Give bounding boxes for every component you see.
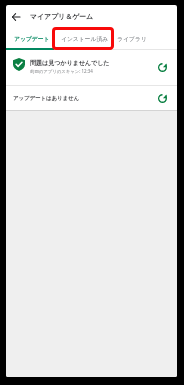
button[interactable]: マイアプリ＆ゲーム	[6, 5, 177, 28]
staticText: 問題は見つかりませんでした	[30, 59, 110, 67]
button[interactable]: アップデートはありません	[6, 86, 177, 110]
staticText: マイアプリ＆ゲーム	[30, 12, 94, 21]
button[interactable]	[6, 5, 29, 28]
button[interactable]: アップデート	[8, 28, 56, 49]
button[interactable]	[153, 86, 177, 110]
staticText: アップデートはありません	[13, 95, 160, 102]
staticText: アップデート	[14, 35, 50, 42]
staticText: ライブラリ	[117, 35, 147, 42]
button[interactable]: 問題は見つかりませんでした	[6, 50, 177, 85]
button[interactable]: インストール済み	[54, 28, 116, 49]
staticText: 前回のアプリのスキャン: 12:34	[30, 68, 93, 74]
button[interactable]: ライブラリ	[110, 28, 154, 49]
staticText: インストール済み	[61, 35, 109, 42]
button[interactable]	[153, 50, 177, 85]
